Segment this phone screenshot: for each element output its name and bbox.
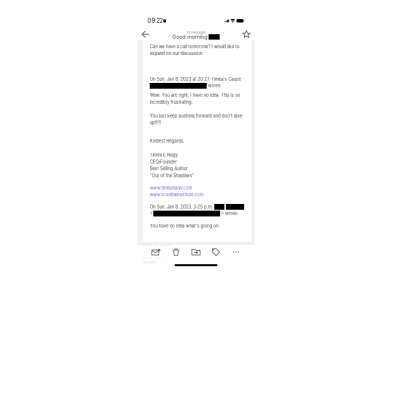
button[interactable]: Delete [171,247,181,257]
staticText: 09:22 [147,17,162,24]
button[interactable]: Label [211,247,221,257]
staticText: Can we have a call tomorrow? I would lik… [165,53,400,71]
button[interactable]: More options [231,247,241,257]
staticText: Good morning [187,40,303,61]
button[interactable]: Mark as unread [151,247,161,257]
staticText: On Sun, Jan 8, 2023 at 19:18, Sarah Lee … [143,244,240,313]
staticText: On Sun, Jan 8, 2023 at 20:27, Timea's Ca… [165,161,400,178]
staticText: expand on our discussion. [165,76,342,93]
staticText: incredibly frustrating. [165,236,307,254]
staticText: Wow. You are right, I have no idea. This… [165,214,400,231]
button[interactable]: Star [241,29,252,40]
button[interactable]: Move to folder [191,247,201,257]
staticText: 26 messages [233,30,296,42]
button[interactable]: Back [140,29,151,40]
